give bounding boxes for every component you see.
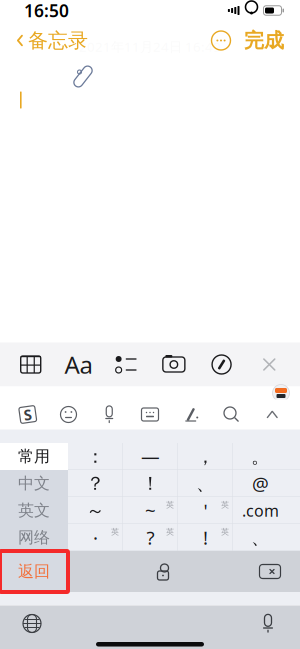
staticText: @ [252,471,269,496]
staticText: S [24,405,32,424]
staticText: 英 [221,500,229,510]
staticText: 、 [251,526,270,549]
staticText: 英 [166,500,174,510]
staticText: 中文 [18,474,50,493]
button[interactable]: ！ [123,470,178,497]
staticText: · [93,525,98,550]
staticText: ~ [145,498,156,523]
staticText: 备忘录 [28,28,88,53]
staticText: ' [203,498,207,523]
button[interactable]: 格式 [57,342,99,386]
staticText: — [141,444,160,469]
button[interactable]: ! [178,524,233,551]
button[interactable]: 更多 [206,25,236,55]
staticText: 英文 [18,501,50,520]
button[interactable]: ： [68,443,123,470]
staticText: 16:50 [24,0,69,22]
button[interactable]: 收起 [255,400,289,428]
button[interactable]: 英文 [0,497,68,524]
staticText: 返回 [18,562,50,581]
button[interactable]: 搜索 [214,400,248,428]
button[interactable]: — [123,443,178,470]
button[interactable]: 返回 [0,551,68,592]
button[interactable]: 表格 [10,342,52,386]
button[interactable]: ， [178,443,233,470]
staticText: 完成 [244,28,284,53]
staticText: Aa [64,349,92,380]
staticText: ? [146,525,154,550]
button[interactable]: 键盘设置 [133,400,167,428]
staticText: ! [203,525,208,550]
button[interactable]: 删除 [258,562,282,580]
button[interactable]: ? [123,524,178,551]
button[interactable]: 。 [233,443,288,470]
button[interactable]: 搜狗输入法 [11,400,45,428]
staticText: 英 [221,527,229,537]
button[interactable]: 常用 [0,443,68,470]
button[interactable]: ' [178,497,233,524]
staticText: ？ [86,472,105,495]
button[interactable]: ～ [68,497,123,524]
button[interactable]: @ [233,470,288,497]
button[interactable]: 中文 [0,470,68,497]
button[interactable]: 语音输入 [248,609,288,637]
button[interactable]: 切换键盘 [12,609,52,637]
staticText: 英 [111,527,119,537]
staticText: ， [196,445,215,468]
button[interactable]: ？ [68,470,123,497]
staticText: 2021年11月24日 16:49 [79,38,221,55]
staticText: .com [242,500,279,521]
button[interactable]: 完成 [236,25,292,55]
button[interactable]: 标记 [201,342,243,386]
button[interactable]: 备忘录 [6,25,98,55]
button[interactable]: 清单 [105,342,147,386]
staticText: ： [86,445,105,468]
staticText: 常用 [18,447,50,466]
button[interactable]: 网络 [0,524,68,551]
staticText: ～ [86,499,105,522]
button[interactable]: 锁定 [153,561,173,581]
button[interactable]: 表情 [51,400,85,428]
button[interactable]: 、 [178,470,233,497]
button[interactable]: 手写 [174,400,208,428]
button[interactable]: 语音输入 [92,400,126,428]
button[interactable]: .com [233,497,288,524]
button[interactable]: 相机 [153,342,195,386]
button[interactable]: ~ [123,497,178,524]
button[interactable]: · [68,524,123,551]
staticText: ！ [141,472,160,495]
staticText: 英 [166,527,174,537]
button[interactable]: 关闭 [248,342,290,386]
button[interactable]: 、 [233,524,288,551]
staticText: 、 [196,472,215,495]
staticText: 。 [251,445,270,468]
staticText: 网络 [18,528,50,547]
